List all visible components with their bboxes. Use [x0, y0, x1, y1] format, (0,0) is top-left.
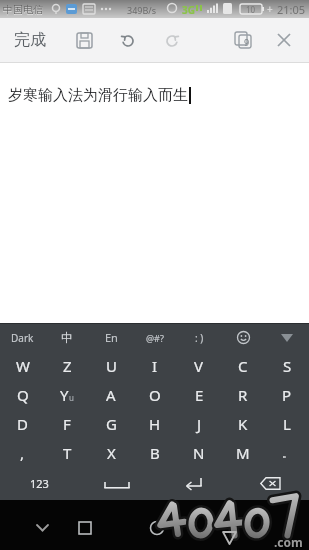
button[interactable]: Dark: [0, 324, 45, 351]
button[interactable]: L: [265, 409, 309, 438]
staticText: Q: [17, 385, 29, 405]
staticText: 21:05: [277, 2, 306, 17]
staticText: L: [283, 414, 291, 434]
button[interactable]: @#?: [133, 324, 177, 351]
staticText: .com: [274, 534, 303, 550]
staticText: 123: [30, 476, 49, 491]
button[interactable]: [143, 514, 171, 542]
button[interactable]: X: [89, 438, 133, 467]
button[interactable]: H: [133, 409, 177, 438]
staticText: En: [105, 330, 118, 345]
staticText: H: [149, 414, 161, 434]
staticText: Y: [60, 385, 69, 405]
staticText: V: [194, 356, 204, 376]
button[interactable]: W: [0, 351, 45, 380]
button[interactable]: G: [89, 409, 133, 438]
staticText: @#?: [146, 332, 164, 344]
staticText: Z: [63, 356, 72, 376]
staticText: M: [236, 443, 250, 463]
button[interactable]: R: [221, 380, 265, 409]
staticText: P: [282, 385, 292, 405]
staticText: X: [107, 443, 116, 463]
button[interactable]: [272, 28, 296, 52]
button[interactable]: [116, 28, 140, 52]
staticText: K: [238, 414, 248, 434]
button[interactable]: P: [265, 380, 309, 409]
staticText: F: [63, 414, 71, 434]
button[interactable]: [78, 467, 155, 500]
button[interactable]: M: [221, 438, 265, 467]
staticText: R: [238, 385, 248, 405]
staticText: O: [149, 385, 161, 405]
button[interactable]: T: [45, 438, 89, 467]
button[interactable]: C: [221, 351, 265, 380]
button[interactable]: I: [133, 351, 177, 380]
staticText: +: [267, 2, 273, 16]
button[interactable]: K: [221, 409, 265, 438]
staticText: 3G: [182, 3, 195, 17]
staticText: S: [283, 356, 292, 376]
staticText: D: [17, 414, 28, 434]
button[interactable]: F: [45, 409, 89, 438]
button[interactable]: 123: [0, 467, 78, 500]
button[interactable]: Y: [45, 380, 89, 409]
staticText: 。: [282, 446, 293, 460]
button[interactable]: [221, 324, 265, 351]
staticText: 349B/s: [127, 4, 156, 16]
button[interactable]: S: [265, 351, 309, 380]
staticText: 完成: [14, 30, 46, 50]
staticText: 9: [244, 36, 250, 48]
button[interactable]: A: [89, 380, 133, 409]
button[interactable]: B: [133, 438, 177, 467]
staticText: G: [106, 414, 117, 434]
button[interactable]: [71, 514, 99, 542]
button[interactable]: O: [133, 380, 177, 409]
staticText: E: [195, 385, 204, 405]
staticText: ,: [20, 443, 25, 463]
staticText: C: [238, 356, 248, 376]
button[interactable]: U: [89, 351, 133, 380]
button[interactable]: V: [177, 351, 221, 380]
staticText: 中国电信: [3, 3, 43, 16]
staticText: : ): [195, 331, 204, 345]
button[interactable]: [155, 467, 232, 500]
staticText: A: [106, 385, 116, 405]
button[interactable]: [160, 28, 184, 52]
button[interactable]: 中: [45, 324, 89, 351]
staticText: 10: [246, 4, 256, 15]
staticText: W: [16, 356, 30, 376]
button[interactable]: N: [177, 438, 221, 467]
button[interactable]: Q: [0, 380, 45, 409]
staticText: I: [152, 356, 158, 376]
button[interactable]: [232, 467, 309, 500]
staticText: T: [63, 443, 72, 463]
staticText: U: [106, 356, 117, 376]
button[interactable]: : ): [177, 324, 221, 351]
button[interactable]: 9: [231, 28, 255, 52]
staticText: Dark: [11, 331, 34, 345]
button[interactable]: ,: [0, 438, 45, 467]
button[interactable]: En: [89, 324, 133, 351]
staticText: 岁寒输入法为滑行输入而生: [8, 86, 188, 105]
button[interactable]: 完成: [4, 24, 56, 56]
button[interactable]: [28, 514, 56, 542]
button[interactable]: D: [0, 409, 45, 438]
button[interactable]: [72, 28, 96, 52]
button[interactable]: [265, 324, 309, 351]
button[interactable]: 。: [265, 438, 309, 467]
button[interactable]: Z: [45, 351, 89, 380]
staticText: 中: [61, 330, 73, 345]
staticText: B: [150, 443, 160, 463]
staticText: u: [69, 392, 74, 403]
button[interactable]: J: [177, 409, 221, 438]
button[interactable]: E: [177, 380, 221, 409]
staticText: N: [193, 443, 205, 463]
staticText: J: [197, 414, 202, 434]
